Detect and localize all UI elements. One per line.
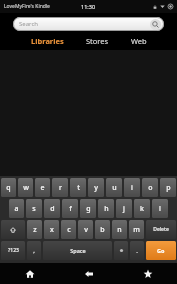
staticText: Stores [86,36,109,46]
button[interactable]: q [1,178,16,197]
button[interactable]: l [152,199,168,218]
button[interactable]: a [9,199,24,218]
staticText: r [59,183,62,193]
staticText: ?123 [8,247,19,254]
button[interactable]: i [124,178,140,197]
button[interactable]: ?123 [1,241,25,260]
staticText: k [140,204,144,214]
button[interactable]: z [27,220,42,239]
button[interactable]: t [70,178,86,197]
staticText: t [77,183,80,193]
button[interactable]: , [27,241,41,260]
button[interactable]: c [61,220,76,239]
button[interactable]: w [18,178,33,197]
staticText: l [159,204,161,214]
staticText: x [50,225,54,235]
staticText: v [84,225,88,235]
button[interactable]: j [116,199,132,218]
button[interactable]: s [26,199,42,218]
button[interactable]: o [142,178,158,197]
button[interactable]: Back [59,263,118,284]
button[interactable]: b [95,220,110,239]
staticText: g [86,204,91,214]
staticText: f [69,204,72,214]
staticText: w [23,183,29,193]
button[interactable]: Go [146,241,176,260]
staticText: m [133,225,140,235]
staticText: c [67,225,71,235]
button[interactable]: p [160,178,176,197]
staticText: n [117,225,122,235]
staticText: e [40,183,45,193]
staticText: s [32,204,36,214]
button[interactable]: Web [129,34,149,48]
staticText: Search [19,20,38,28]
button[interactable]: d [44,199,60,218]
staticText: j [123,204,125,214]
button[interactable]: Home [0,263,59,284]
staticText: o [148,183,153,193]
staticText: Space [70,247,86,254]
button[interactable]: x [44,220,59,239]
staticText: a [14,204,19,214]
staticText: q [6,183,11,193]
button[interactable]: n [112,220,127,239]
button[interactable]: Stores [84,34,111,48]
staticText: LoveMyFire's Kindle [4,3,50,10]
button[interactable]: Search [150,19,161,30]
staticText: Libraries [31,36,64,46]
staticText: p [166,183,171,193]
button[interactable]: Shift [1,220,25,239]
staticText: z [33,225,37,235]
button[interactable]: r [52,178,68,197]
staticText: 11:30 [81,3,96,10]
button[interactable]: Space [43,241,112,260]
staticText: d [50,204,55,214]
staticText: Web [131,36,147,46]
staticText: b [100,225,105,235]
button[interactable]: y [88,178,104,197]
staticText: , [33,247,35,255]
staticText: u [112,183,117,193]
staticText: . [136,247,138,255]
button[interactable]: Search [13,17,164,31]
button[interactable]: k [134,199,150,218]
button[interactable]: m [129,220,144,239]
button[interactable]: h [98,199,114,218]
staticText: y [94,183,98,193]
button[interactable]: Delete [146,220,176,239]
staticText: h [104,204,109,214]
button[interactable]: Libraries [29,34,66,48]
staticText: Delete [153,226,169,233]
button[interactable]: Emoji [114,241,128,260]
button[interactable]: u [106,178,122,197]
staticText: Go [157,247,165,254]
staticText: i [131,183,133,193]
button[interactable]: f [62,199,78,218]
button[interactable]: g [80,199,96,218]
button[interactable]: e [35,178,50,197]
button[interactable]: Favorites [118,263,177,284]
button[interactable]: . [130,241,144,260]
button[interactable]: v [78,220,93,239]
